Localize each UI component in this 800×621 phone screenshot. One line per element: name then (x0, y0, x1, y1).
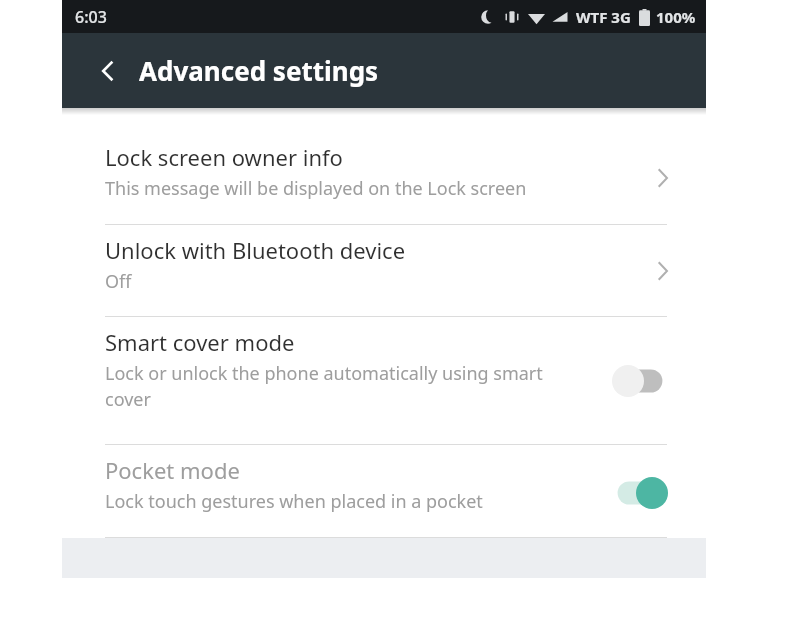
button[interactable]: Pocket mode toggle (600, 471, 680, 515)
staticText: Pocket mode (105, 455, 240, 485)
button[interactable]: Back (91, 54, 125, 88)
button[interactable]: Open Lock screen owner info (645, 160, 681, 196)
staticText: Off (105, 269, 132, 294)
staticText: Lock or unlock the phone automatically u… (105, 361, 586, 411)
staticText: 100% (656, 7, 696, 27)
button[interactable]: Pocket mode (62, 445, 706, 537)
staticText: Unlock with Bluetooth device (105, 235, 406, 265)
staticText: This message will be displayed on the Lo… (105, 176, 527, 201)
staticText: Lock screen owner info (105, 142, 343, 172)
staticText: 6:03 (75, 6, 107, 28)
button[interactable]: Smart cover mode (62, 317, 706, 444)
staticText: Smart cover mode (105, 327, 295, 357)
button[interactable]: Open Unlock with Bluetooth device (645, 253, 681, 289)
button[interactable]: Unlock with Bluetooth device (62, 225, 706, 316)
button[interactable]: Lock screen owner info (62, 132, 706, 224)
staticText: Lock touch gestures when placed in a poc… (105, 489, 483, 514)
staticText: Advanced settings (139, 53, 379, 88)
button[interactable]: Smart cover mode toggle (600, 359, 680, 403)
staticText: WTF 3G (576, 7, 631, 27)
